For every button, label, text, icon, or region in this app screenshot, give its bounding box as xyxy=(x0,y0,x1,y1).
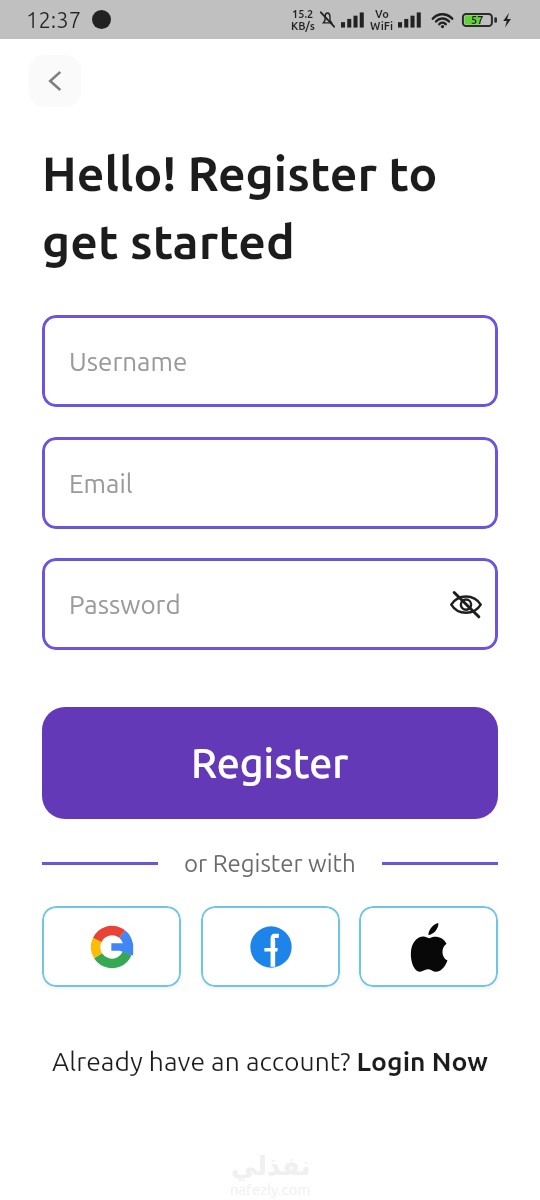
button[interactable]: Username xyxy=(42,315,498,407)
staticText: Hello! Register to get started xyxy=(42,146,438,268)
button[interactable]: Password xyxy=(42,558,498,650)
staticText: Already have an account? Login Now xyxy=(52,1046,488,1076)
button[interactable]: Back xyxy=(29,55,81,107)
staticText: Vo xyxy=(375,8,389,20)
staticText: or Register with xyxy=(184,850,356,877)
staticText: nafezly.com xyxy=(230,1181,311,1198)
button[interactable]: Register xyxy=(42,707,498,819)
staticText: Email xyxy=(69,469,133,498)
staticText: Register xyxy=(191,740,349,786)
staticText: WiFi xyxy=(370,20,394,32)
button[interactable]: Email xyxy=(42,437,498,529)
staticText: KB/s xyxy=(291,20,315,32)
button[interactable]: Sign up with Facebook xyxy=(201,906,340,987)
button[interactable]: Sign up with Google xyxy=(42,906,181,987)
staticText: 15.2 xyxy=(292,8,314,20)
button[interactable]: Already have an account? Login Now xyxy=(52,1046,488,1076)
staticText: Password xyxy=(69,590,181,619)
staticText: نفذلي xyxy=(231,1151,311,1181)
button[interactable]: Sign up with Apple xyxy=(359,906,498,987)
staticText: 57 xyxy=(471,14,484,26)
staticText: Username xyxy=(69,347,188,376)
staticText: 12:37 xyxy=(26,7,82,32)
